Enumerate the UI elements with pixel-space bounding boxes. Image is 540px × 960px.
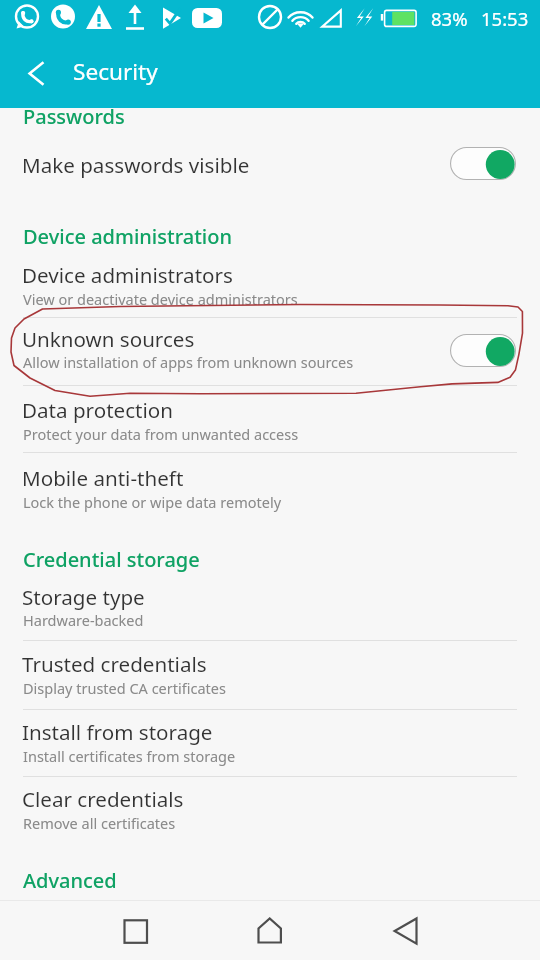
staticText: Credential storage: [23, 546, 200, 573]
button[interactable]: Back: [18, 56, 60, 98]
staticText: Display trusted CA certificates: [23, 678, 226, 698]
button[interactable]: Back: [380, 906, 430, 956]
staticText: Install from storage: [22, 718, 213, 746]
button[interactable]: Toggle switch: [450, 147, 516, 180]
staticText: Make passwords visible: [22, 151, 250, 179]
button[interactable]: Recent apps: [110, 906, 160, 956]
staticText: Advanced: [23, 867, 117, 894]
button[interactable]: Install from storage: [0, 708, 540, 774]
button[interactable]: Unknown sources: [0, 317, 540, 384]
button[interactable]: Make passwords visible: [0, 142, 540, 202]
staticText: View or deactivate device administrators: [23, 289, 298, 309]
staticText: Storage type: [22, 583, 145, 611]
button[interactable]: Device administrators: [0, 251, 540, 318]
staticText: Clear credentials: [22, 785, 184, 813]
staticText: Device administration: [23, 223, 232, 250]
staticText: Mobile anti-theft: [22, 464, 184, 492]
button[interactable]: Data protection: [0, 386, 540, 452]
staticText: Unknown sources: [22, 325, 195, 353]
button[interactable]: Trusted credentials: [0, 640, 540, 708]
staticText: Install certificates from storage: [23, 746, 236, 766]
staticText: Trusted credentials: [22, 650, 207, 678]
staticText: 15:53: [481, 6, 529, 31]
staticText: 83%: [431, 6, 468, 31]
staticText: Remove all certificates: [23, 813, 176, 833]
staticText: Protect your data from unwanted access: [23, 424, 299, 444]
staticText: Device administrators: [22, 261, 233, 289]
button[interactable]: Toggle switch: [450, 334, 516, 367]
staticText: Security: [73, 56, 158, 87]
staticText: Allow installation of apps from unknown …: [23, 352, 354, 372]
staticText: Data protection: [22, 396, 174, 424]
staticText: Hardware-backed: [23, 610, 144, 630]
staticText: Passwords: [23, 103, 125, 130]
staticText: Lock the phone or wipe data remotely: [23, 492, 282, 512]
button[interactable]: Clear credentials: [0, 775, 540, 842]
button[interactable]: Home: [244, 906, 294, 956]
button[interactable]: Storage type: [0, 573, 540, 641]
button[interactable]: Mobile anti-theft: [0, 454, 540, 521]
